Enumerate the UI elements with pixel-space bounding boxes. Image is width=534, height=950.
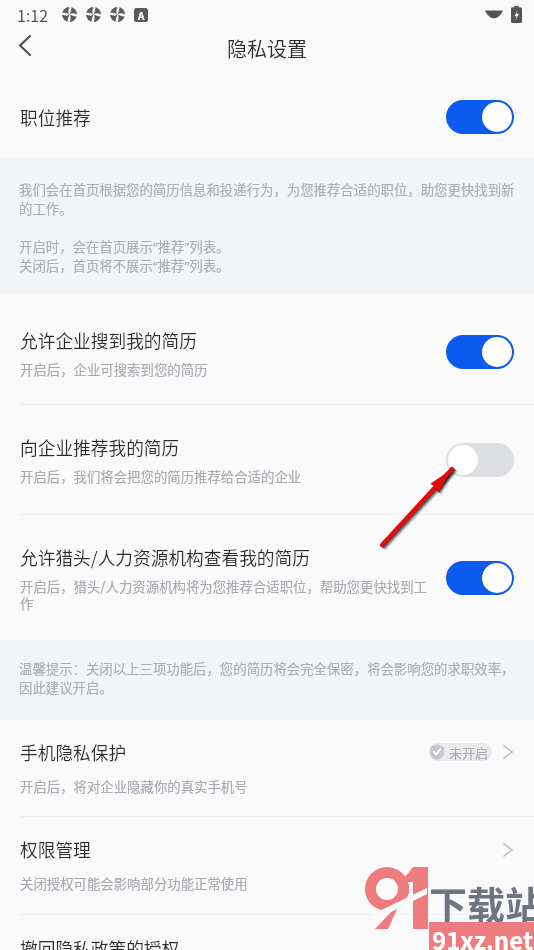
staticText: 开启时，会在首页展示“推荐”列表。: [19, 236, 230, 255]
staticText: 下载站: [429, 875, 534, 930]
button[interactable]: Switch on: [446, 561, 514, 595]
staticText: 开启后，我们将会把您的简历推荐给合适的企业: [20, 466, 302, 485]
staticText: 未开启: [449, 743, 489, 761]
staticText: 隐私设置: [227, 34, 307, 63]
button[interactable]: 向企业推荐我的简历: [0, 405, 534, 514]
staticText: 开启后，企业可搜索到您的简历: [20, 359, 208, 378]
staticText: 关闭授权可能会影响部分功能正常使用: [20, 873, 248, 892]
button[interactable]: 允许企业搜到我的简历: [0, 300, 534, 404]
staticText: 撤回隐私政策的授权: [20, 935, 180, 950]
staticText: 允许企业搜到我的简历: [20, 327, 197, 353]
staticText: 1:12: [17, 3, 49, 26]
button[interactable]: Switch off: [446, 443, 514, 477]
staticText: 职位推荐: [20, 104, 91, 130]
button[interactable]: 手机隐私保护: [0, 720, 534, 816]
button[interactable]: Switch on: [446, 335, 514, 369]
staticText: 允许猎头/人力资源机构查看我的简历: [20, 544, 310, 570]
staticText: 开启后，将对企业隐藏你的真实手机号: [20, 776, 248, 795]
button[interactable]: Back: [6, 26, 44, 64]
staticText: 我们会在首页根据您的简历信息和投递行为，为您推荐合适的职位，助您更快找到新的工作…: [19, 179, 515, 217]
staticText: 向企业推荐我的简历: [20, 434, 180, 460]
staticText: A: [138, 8, 145, 22]
staticText: 温馨提示：关闭以上三项功能后，您的简历将会完全保密，将会影响您的求职效率，因此建…: [19, 658, 515, 696]
staticText: 关闭后，首页将不展示“推荐”列表。: [19, 255, 230, 274]
staticText: 手机隐私保护: [20, 739, 127, 765]
button[interactable]: 职位推荐: [0, 75, 534, 158]
staticText: 91xz.net: [432, 922, 534, 950]
staticText: 开启后，猎头/人力资源机构将为您推荐合适职位，帮助您更快找到工作: [20, 576, 434, 613]
button[interactable]: Switch on: [446, 100, 514, 134]
button[interactable]: 允许猎头/人力资源机构查看我的简历: [0, 515, 534, 640]
staticText: 权限管理: [20, 836, 91, 862]
button[interactable]: 撤回隐私政策的授权: [0, 915, 534, 950]
button[interactable]: 权限管理: [0, 817, 534, 914]
